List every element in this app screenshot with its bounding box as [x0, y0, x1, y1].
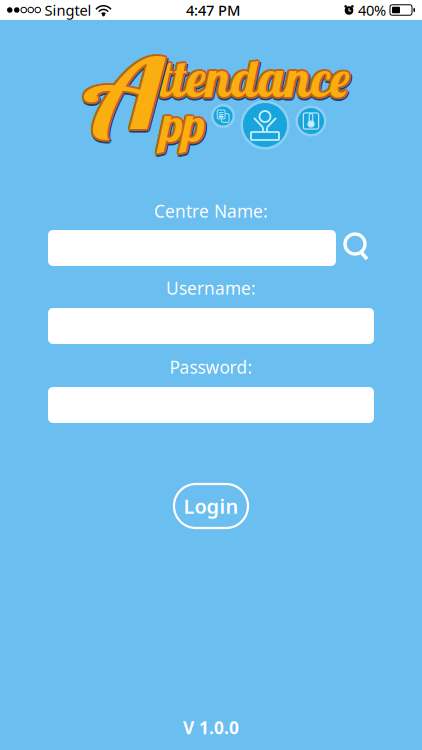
staticText: pp	[160, 92, 204, 152]
staticText: pp	[159, 97, 203, 157]
staticText: ttendance	[159, 50, 351, 113]
staticText: pp	[163, 95, 207, 155]
staticText: A	[91, 21, 163, 171]
staticText: ttendance	[157, 49, 349, 113]
staticText: A	[88, 18, 160, 168]
staticText: ttendance	[160, 46, 352, 110]
staticText: ttendance	[156, 46, 348, 110]
staticText: A	[88, 21, 160, 171]
staticText: Username:	[166, 276, 256, 299]
staticText: 4:47 PM	[186, 0, 240, 20]
staticText: pp	[162, 94, 206, 154]
staticText: ttendance	[158, 46, 350, 110]
staticText: pp	[159, 93, 203, 153]
staticText: pp	[161, 97, 205, 157]
staticText: pp	[158, 94, 202, 154]
staticText: ttendance	[161, 49, 353, 112]
button[interactable]: Search centre	[336, 233, 374, 263]
staticText: Password:	[169, 355, 252, 378]
staticText: A	[88, 16, 160, 166]
staticText: A	[87, 18, 159, 168]
staticText: ttendance	[157, 45, 349, 108]
staticText: A	[91, 19, 163, 169]
staticText: A	[90, 17, 162, 167]
staticText: pp	[160, 94, 204, 154]
staticText: A	[87, 17, 159, 167]
staticText: ttendance	[158, 45, 350, 108]
staticText: ttendance	[157, 48, 349, 111]
staticText: pp	[159, 95, 203, 155]
button[interactable]: Login	[174, 484, 248, 528]
staticText: ttendance	[159, 45, 351, 108]
staticText: A	[90, 19, 162, 169]
staticText: ttendance	[159, 48, 351, 111]
staticText: pp	[161, 93, 205, 153]
staticText: A	[87, 19, 159, 169]
staticText: pp	[161, 95, 205, 155]
staticText: pp	[160, 96, 204, 156]
staticText: A	[89, 21, 161, 171]
staticText: ttendance	[158, 48, 350, 111]
staticText: Login	[183, 493, 238, 519]
staticText: 40%	[358, 0, 386, 20]
staticText: Singtel	[44, 0, 91, 20]
staticText: A	[90, 18, 162, 168]
staticText: A	[88, 20, 160, 170]
staticText: pp	[163, 97, 207, 157]
staticText: ttendance	[161, 47, 353, 111]
staticText: Centre Name:	[154, 199, 268, 222]
staticText: V 1.0.0	[183, 716, 239, 739]
